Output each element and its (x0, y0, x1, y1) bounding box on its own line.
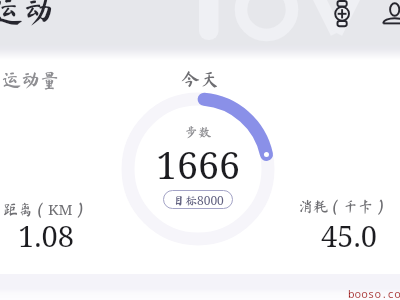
staticText: 运动量 (2, 70, 60, 89)
staticText: 今天 (0, 69, 400, 88)
button[interactable]: Add device (328, 0, 356, 28)
button[interactable]: 目标8000 (163, 190, 233, 209)
staticText: 目标8000 (173, 192, 224, 208)
staticText: 消耗（千卡） (298, 199, 389, 214)
staticText: 距离（KM） (3, 199, 88, 219)
staticText: 1666 (0, 139, 398, 190)
staticText: 运动 (0, 0, 54, 27)
staticText: 45.0 (321, 216, 377, 255)
staticText: booso.com (348, 286, 400, 300)
button[interactable]: Account (381, 0, 400, 28)
staticText: 步数 (0, 125, 398, 139)
staticText: 1.08 (18, 216, 74, 255)
